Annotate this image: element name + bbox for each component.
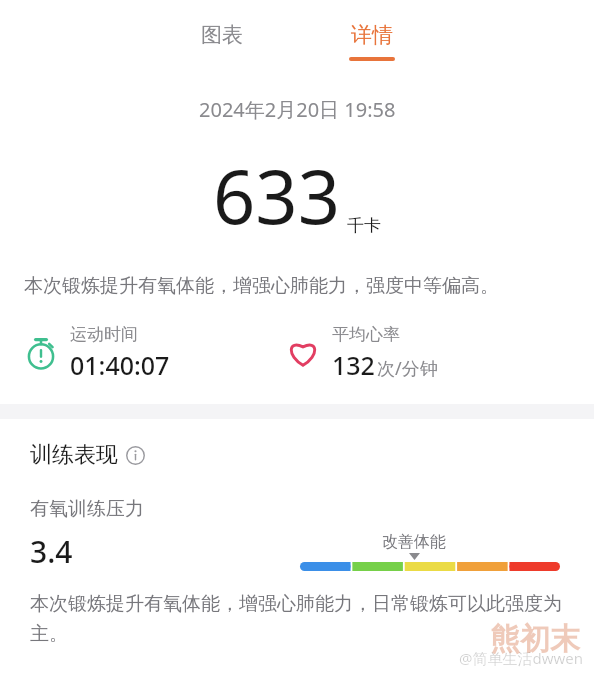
staticText: 运动时间 (70, 324, 138, 345)
button[interactable]: Duration (24, 324, 286, 382)
staticText: @简单生活dwwen (459, 648, 584, 668)
staticText: 训练表现 (30, 441, 118, 469)
staticText: 本次锻炼提升有氧体能，增强心肺能力，日常锻炼可以此强度为主。 (30, 592, 568, 646)
staticText: 详情 (351, 22, 393, 48)
staticText: 图表 (201, 22, 243, 48)
staticText: 平均心率 (332, 324, 400, 345)
other: Info about training performance (126, 446, 145, 465)
button[interactable]: 图表 (167, 0, 277, 64)
button[interactable]: Average heart rate (286, 324, 570, 382)
staticText: 3.4 (30, 531, 73, 572)
staticText: 2024年2月20日 19:58 (199, 96, 396, 123)
staticText: 熊初末 (490, 620, 580, 658)
staticText: 有氧训练压力 (30, 497, 144, 521)
staticText: 132 (332, 348, 375, 382)
button[interactable]: 详情 (317, 0, 427, 64)
button[interactable]: 训练表现 (30, 441, 145, 469)
staticText: 633 (213, 145, 340, 246)
staticText: 01:40:07 (70, 348, 170, 382)
staticText: 本次锻炼提升有氧体能，增强心肺能力，强度中等偏高。 (24, 274, 499, 298)
other: Duration (24, 336, 58, 370)
staticText: 千卡 (347, 215, 381, 236)
other: Average heart rate (286, 336, 320, 370)
staticText: 次/分钟 (377, 356, 438, 381)
staticText: 改善体能 (382, 532, 446, 552)
